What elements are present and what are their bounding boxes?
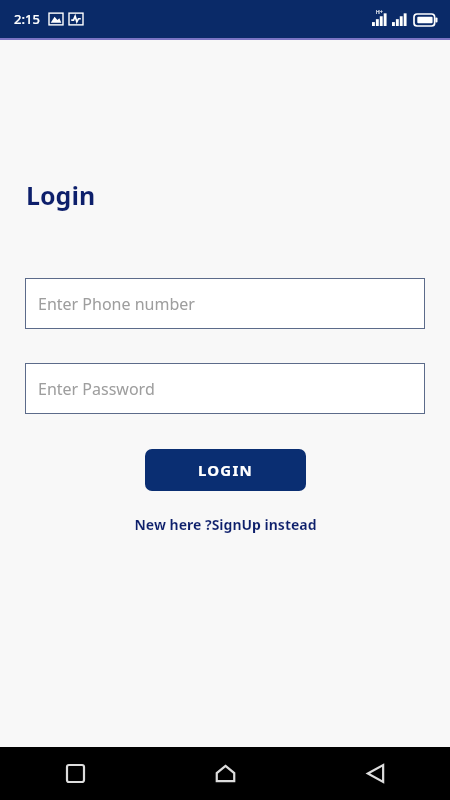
button[interactable]: Home [150, 747, 300, 800]
button[interactable]: Enter Password [25, 363, 425, 414]
staticText: 2:15 [14, 10, 40, 28]
staticText: New here ?SignUp instead [134, 515, 317, 534]
button[interactable]: New here ?SignUp instead [128, 512, 323, 537]
staticText: H+ [376, 9, 383, 16]
staticText: Enter Password [38, 378, 155, 400]
button[interactable]: Recent apps [0, 747, 150, 800]
staticText: Enter Phone number [38, 293, 195, 315]
staticText: Login [26, 178, 96, 212]
button[interactable]: LOGIN [145, 449, 306, 491]
staticText: LOGIN [198, 460, 253, 480]
button[interactable]: Back [300, 747, 450, 800]
button[interactable]: Enter Phone number [25, 278, 425, 329]
